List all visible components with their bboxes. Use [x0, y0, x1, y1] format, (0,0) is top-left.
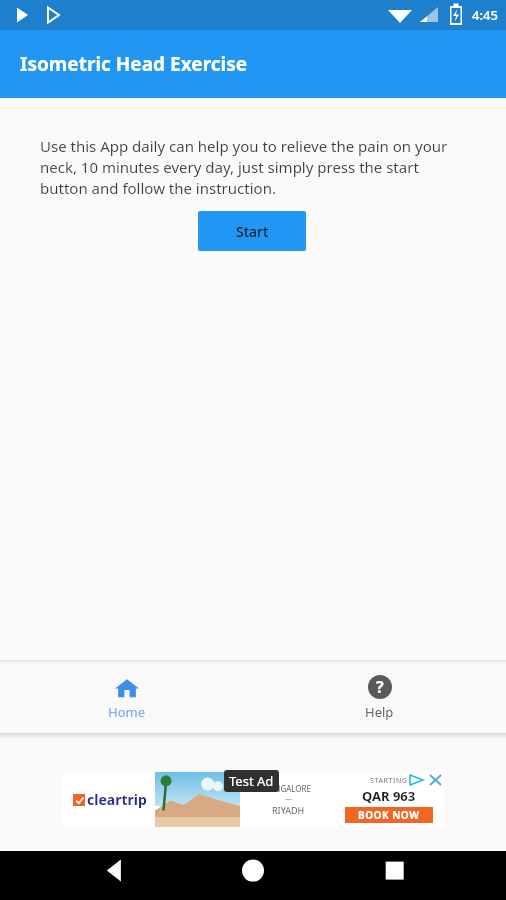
staticText: Test Ad	[229, 772, 274, 790]
staticText: Isometric Head Exercise	[20, 51, 248, 77]
button[interactable]: ?	[253, 662, 506, 733]
staticText: Home	[108, 703, 145, 721]
button[interactable]: cleartrip	[63, 772, 444, 827]
staticText: cleartrip	[87, 790, 147, 809]
staticText: Use this App daily can help you to relie…	[40, 136, 466, 199]
staticText: QAR 963	[362, 787, 416, 805]
button[interactable]: Home	[0, 662, 253, 733]
staticText: STARTING	[370, 776, 408, 786]
staticText: ?	[376, 676, 384, 698]
staticText: BOOK NOW	[358, 808, 420, 822]
staticText: Help	[365, 703, 394, 721]
staticText: Start	[236, 222, 269, 241]
staticText: RIYADH	[272, 804, 305, 816]
button[interactable]: Start	[198, 211, 306, 251]
staticText: 4:45	[472, 6, 498, 24]
staticText: —	[285, 794, 292, 804]
staticText: BANGALORE	[264, 783, 312, 794]
